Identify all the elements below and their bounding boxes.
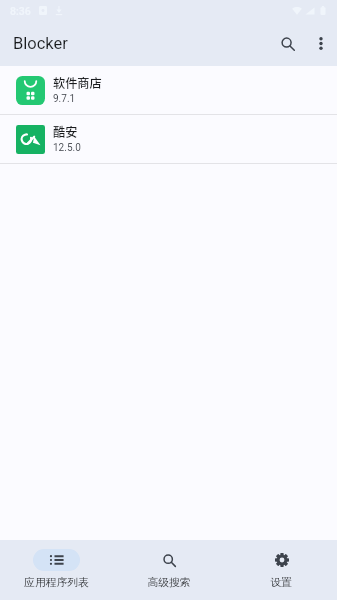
staticText: 设置 <box>270 576 292 590</box>
staticText: 12.5.0 <box>53 142 81 154</box>
button[interactable]: 酷安 <box>0 115 337 163</box>
button[interactable]: Search <box>271 27 304 60</box>
staticText: 软件商店 <box>53 74 102 92</box>
button[interactable]: More options <box>304 27 337 60</box>
button[interactable]: 软件商店 <box>0 66 337 114</box>
button[interactable]: 设置 <box>225 540 337 590</box>
staticText: 应用程序列表 <box>24 576 89 590</box>
staticText: 9.7.1 <box>53 93 76 105</box>
staticText: 8:36 <box>10 5 31 17</box>
button[interactable]: 高级搜索 <box>113 540 225 590</box>
staticText: 高级搜索 <box>147 576 191 590</box>
button[interactable]: 应用程序列表 <box>0 540 113 590</box>
staticText: 酷安 <box>53 123 78 141</box>
staticText: Blocker <box>13 34 68 53</box>
